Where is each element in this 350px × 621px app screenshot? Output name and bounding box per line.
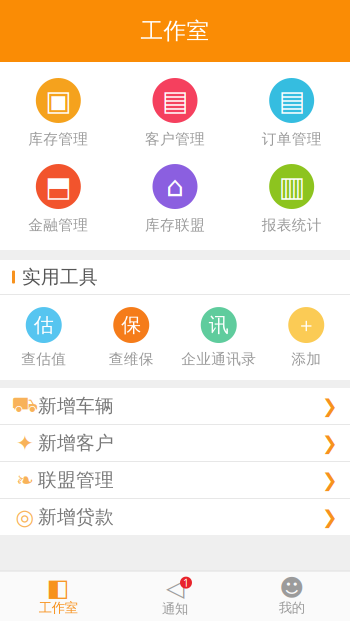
staticText: 新增客户 bbox=[38, 432, 114, 454]
staticText: 通知 bbox=[162, 601, 188, 617]
button[interactable]: 讯 bbox=[175, 307, 262, 368]
button[interactable]: ⌂ bbox=[117, 164, 233, 234]
button[interactable]: ◧ bbox=[0, 578, 117, 616]
staticText: ❯ bbox=[322, 395, 338, 417]
staticText: ▤ bbox=[279, 85, 305, 116]
button[interactable]: ❧ bbox=[0, 462, 350, 498]
button[interactable]: ▤ bbox=[117, 78, 233, 148]
staticText: ▥ bbox=[279, 171, 305, 202]
staticText: 联盟管理 bbox=[38, 469, 114, 491]
button[interactable]: ⬒ bbox=[0, 164, 117, 234]
staticText: 实用工具 bbox=[22, 266, 98, 288]
staticText: 估 bbox=[34, 313, 54, 337]
button[interactable]: ▤ bbox=[233, 78, 350, 148]
button[interactable]: ◁ bbox=[117, 577, 233, 617]
staticText: 工作室 bbox=[140, 17, 209, 45]
button[interactable]: ▥ bbox=[233, 164, 350, 234]
staticText: 查维保 bbox=[109, 350, 154, 368]
staticText: ❯ bbox=[322, 469, 338, 491]
staticText: 查估值 bbox=[21, 350, 66, 368]
staticText: ☻ bbox=[279, 574, 304, 601]
staticText: ⛟ bbox=[11, 396, 38, 416]
staticText: 金融管理 bbox=[28, 216, 88, 234]
staticText: ◁ bbox=[166, 574, 184, 601]
staticText: 客户管理 bbox=[145, 130, 205, 148]
staticText: ❯ bbox=[322, 432, 338, 454]
button[interactable]: ＋ bbox=[262, 307, 350, 368]
staticText: ✦ bbox=[16, 431, 34, 455]
staticText: 库存管理 bbox=[28, 130, 88, 148]
staticText: 订单管理 bbox=[262, 130, 322, 148]
staticText: 我的 bbox=[279, 600, 305, 616]
staticText: 讯 bbox=[209, 313, 229, 337]
staticText: 工作室 bbox=[39, 600, 78, 616]
staticText: ▤ bbox=[162, 85, 188, 116]
button[interactable]: ☻ bbox=[233, 578, 350, 616]
button[interactable]: ✦ bbox=[0, 425, 350, 461]
staticText: ❯ bbox=[322, 506, 338, 528]
staticText: 库存联盟 bbox=[145, 216, 205, 234]
button[interactable]: ▣ bbox=[0, 78, 117, 148]
staticText: ⬒ bbox=[45, 171, 71, 202]
button[interactable]: ⛟ bbox=[0, 388, 350, 424]
button[interactable]: 估 bbox=[0, 307, 87, 368]
staticText: 报表统计 bbox=[262, 216, 322, 234]
staticText: 企业通讯录 bbox=[181, 350, 256, 368]
staticText: 新增贷款 bbox=[38, 506, 114, 528]
staticText: 新增车辆 bbox=[38, 395, 114, 417]
staticText: ❧ bbox=[16, 468, 34, 492]
staticText: 保 bbox=[121, 313, 141, 337]
staticText: ◎ bbox=[15, 505, 34, 529]
staticText: ▣ bbox=[45, 85, 71, 116]
staticText: 1 bbox=[183, 575, 189, 590]
staticText: ◧ bbox=[47, 574, 70, 601]
staticText: ＋ bbox=[296, 313, 316, 337]
staticText: 添加 bbox=[291, 350, 321, 368]
button[interactable]: ◎ bbox=[0, 499, 350, 535]
staticText: ⌂ bbox=[166, 171, 184, 202]
button[interactable]: 保 bbox=[87, 307, 175, 368]
